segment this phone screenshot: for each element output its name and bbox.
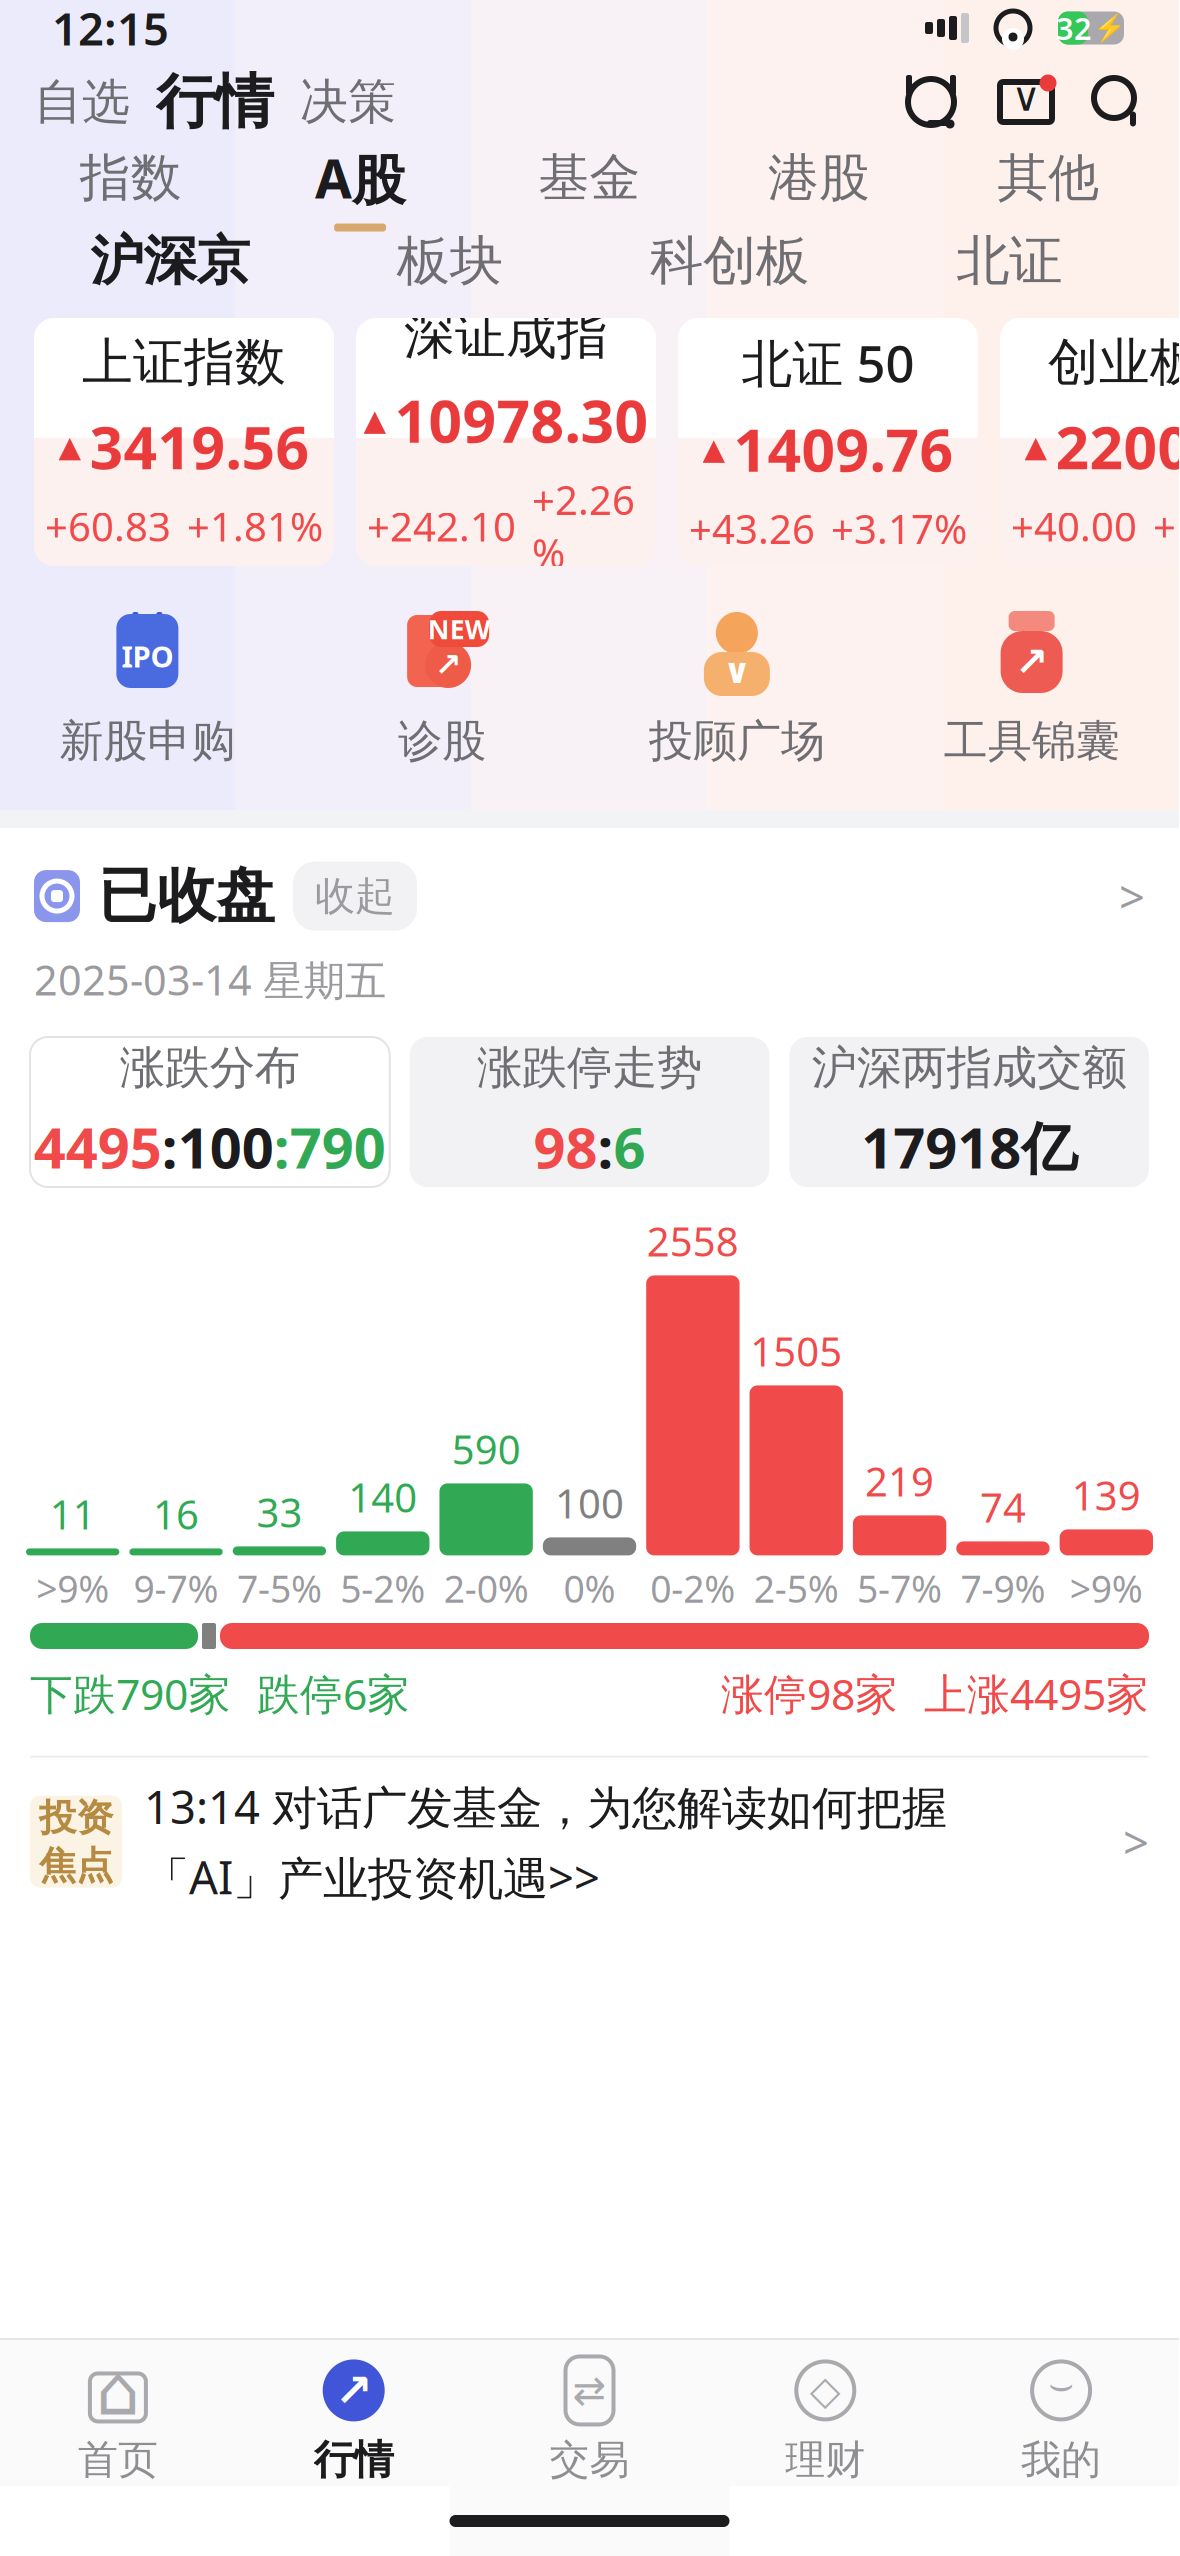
staticText: 219 bbox=[865, 1454, 934, 1507]
staticText: 基金 bbox=[538, 147, 640, 209]
button[interactable]: 沪深京 bbox=[30, 226, 310, 296]
staticText: 98 bbox=[533, 1110, 597, 1184]
button[interactable]: 创业板指 bbox=[1000, 318, 1180, 566]
staticText: 港股 bbox=[768, 147, 870, 209]
button[interactable]: 涨跌停走势 bbox=[410, 1037, 769, 1187]
staticText: 科创板 bbox=[650, 228, 809, 294]
staticText: 指数 bbox=[80, 147, 182, 209]
staticText: 0-2% bbox=[650, 1563, 735, 1613]
button[interactable]: 北证 50 bbox=[678, 318, 978, 566]
button[interactable]: IPO bbox=[0, 606, 295, 768]
button[interactable]: ↗ bbox=[236, 2354, 472, 2486]
staticText: > bbox=[1119, 866, 1145, 926]
staticText: 板块 bbox=[397, 228, 503, 294]
button[interactable]: 决策 bbox=[300, 72, 396, 131]
staticText: 140 bbox=[348, 1470, 417, 1523]
staticText: 2025-03-14 星期五 bbox=[34, 952, 386, 1007]
staticText: +43.26 bbox=[689, 502, 815, 555]
button[interactable]: 上证指数 bbox=[34, 318, 334, 566]
staticText: 工具锦囊 bbox=[944, 714, 1120, 768]
button[interactable]: 港股 bbox=[704, 148, 934, 226]
button[interactable]: 已收盘 bbox=[0, 828, 1179, 932]
staticText: 诊股 bbox=[398, 714, 486, 768]
staticText: 首页 bbox=[78, 2435, 158, 2484]
button[interactable]: 基金 bbox=[475, 148, 704, 226]
staticText: 焦点 bbox=[39, 1843, 113, 1889]
button[interactable]: 科创板 bbox=[589, 226, 869, 296]
staticText: +40.00 bbox=[1011, 499, 1137, 553]
staticText: ▲ bbox=[58, 430, 81, 463]
staticText: 33 bbox=[256, 1485, 302, 1538]
staticText: 行情 bbox=[314, 2435, 394, 2484]
button[interactable]: 行情 bbox=[130, 66, 300, 138]
staticText: 涨停98家 bbox=[721, 1665, 898, 1722]
staticText: >9% bbox=[1070, 1563, 1143, 1613]
staticText: 「AI」产业投资机遇>> bbox=[144, 1846, 600, 1907]
button[interactable]: 其他 bbox=[934, 148, 1163, 226]
staticText: 2-5% bbox=[754, 1563, 839, 1613]
staticText: ⚡ bbox=[1093, 13, 1126, 43]
button[interactable]: ⌂ bbox=[0, 2354, 236, 2486]
staticText: 其他 bbox=[997, 147, 1099, 209]
button[interactable]: 自选 bbox=[34, 72, 130, 131]
staticText: +60.83 bbox=[45, 499, 171, 553]
staticText: 17918亿 bbox=[861, 1110, 1077, 1184]
staticText: 4495 bbox=[34, 1110, 162, 1184]
staticText: 6 bbox=[613, 1110, 645, 1184]
button[interactable]: 深证成指 bbox=[356, 318, 656, 566]
button[interactable]: A股 bbox=[245, 148, 475, 226]
staticText: 7-9% bbox=[960, 1563, 1045, 1613]
staticText: 理财 bbox=[785, 2435, 865, 2484]
staticText: 2558 bbox=[647, 1214, 739, 1267]
staticText: ▲ bbox=[702, 432, 725, 466]
button[interactable]: ↗ bbox=[884, 606, 1179, 768]
staticText: 上证指数 bbox=[82, 331, 286, 394]
button[interactable]: ⌣ bbox=[943, 2354, 1179, 2486]
staticText: 2-0% bbox=[444, 1563, 529, 1613]
staticText: 上涨4495家 bbox=[924, 1665, 1149, 1722]
staticText: 9-7% bbox=[133, 1563, 218, 1613]
staticText: A股 bbox=[315, 142, 405, 214]
staticText: 收起 bbox=[315, 871, 395, 921]
staticText: 590 bbox=[452, 1422, 521, 1475]
button[interactable]: ↗ bbox=[295, 606, 590, 768]
button[interactable]: 投资 bbox=[0, 1758, 1179, 1926]
staticText: : bbox=[162, 1110, 178, 1184]
staticText: 32 bbox=[1056, 8, 1092, 48]
staticText: 北证 50 bbox=[741, 329, 914, 396]
button[interactable]: ⇄ bbox=[472, 2354, 707, 2486]
staticText: >9% bbox=[36, 1563, 109, 1613]
staticText: +2.26% bbox=[532, 473, 635, 579]
staticText: +242.10 bbox=[367, 499, 516, 553]
button[interactable]: 板块 bbox=[310, 226, 590, 296]
staticText: ∨ bbox=[1011, 74, 1040, 120]
button[interactable]: 搜索 bbox=[1091, 75, 1145, 129]
staticText: ↗ bbox=[1015, 639, 1049, 685]
staticText: 16 bbox=[153, 1487, 199, 1540]
staticText: 我的 bbox=[1021, 2435, 1101, 2484]
button[interactable]: 涨跌分布 bbox=[30, 1037, 390, 1187]
staticText: 跌停6家 bbox=[257, 1665, 410, 1722]
staticText: 74 bbox=[980, 1480, 1026, 1533]
staticText: 涨跌分布 bbox=[120, 1040, 300, 1096]
staticText: 10978.30 bbox=[394, 381, 648, 459]
staticText: 100 bbox=[178, 1110, 274, 1184]
staticText: ↗ bbox=[435, 647, 462, 683]
staticText: ▲ bbox=[363, 403, 386, 437]
button[interactable]: ◇ bbox=[707, 2354, 943, 2486]
button[interactable]: ∨ bbox=[589, 606, 884, 768]
button[interactable]: 指数 bbox=[16, 148, 245, 226]
staticText: ↗ bbox=[335, 2365, 373, 2416]
staticText: 涨跌停走势 bbox=[477, 1040, 702, 1096]
staticText: 5-7% bbox=[857, 1563, 942, 1613]
button[interactable]: 北证 bbox=[869, 226, 1149, 296]
button[interactable]: 客服 bbox=[901, 73, 961, 131]
staticText: 交易 bbox=[549, 2435, 629, 2484]
staticText: 自选 bbox=[34, 72, 130, 131]
button[interactable]: 消息 bbox=[995, 75, 1057, 129]
staticText: ∨ bbox=[723, 651, 751, 691]
staticText: > bbox=[1123, 1812, 1149, 1872]
button[interactable]: 沪深两指成交额 bbox=[789, 1037, 1149, 1187]
staticText: ⌣ bbox=[1048, 2366, 1074, 2405]
staticText: 创业板指 bbox=[1048, 331, 1180, 394]
